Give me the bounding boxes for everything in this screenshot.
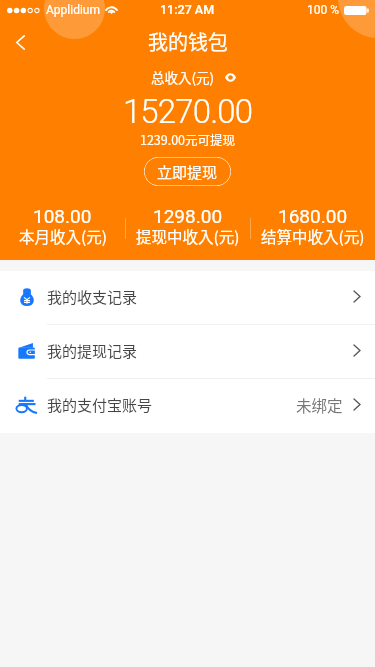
button[interactable]: 我的提现记录 (0, 325, 375, 379)
staticText: 我的支付宝账号 (47, 394, 153, 416)
staticText: 总收入(元) (151, 67, 215, 87)
staticText: Applidium (46, 3, 100, 17)
staticText: 结算中收入(元) (261, 225, 365, 247)
staticText: 108.00 (33, 205, 92, 227)
button[interactable]: 我的收支记录 (0, 271, 375, 325)
staticText: 15270.00 (0, 92, 375, 131)
staticText: 提现中收入(元) (136, 225, 240, 247)
staticText: 我的钱包 (148, 27, 228, 56)
staticText: 1298.00 (153, 205, 223, 227)
staticText: 1239.00元可提现 (0, 130, 375, 148)
button[interactable]: 我的支付宝账号 (0, 379, 375, 433)
staticText: 我的收支记录 (47, 286, 138, 308)
staticText: 立即提现 (157, 161, 218, 183)
staticText: 我的提现记录 (47, 340, 138, 362)
staticText: 100 % (307, 3, 339, 17)
staticText: 1680.00 (278, 205, 348, 227)
staticText: 11:27 AM (160, 2, 215, 17)
staticText: 未绑定 (296, 394, 343, 416)
button[interactable]: 立即提现 (144, 157, 231, 186)
staticText: 本月收入(元) (19, 225, 107, 247)
button[interactable]: Back (0, 21, 42, 63)
